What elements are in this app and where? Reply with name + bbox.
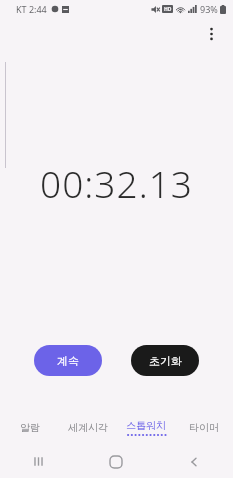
- button[interactable]: More options: [197, 20, 225, 48]
- staticText: HD: [164, 6, 172, 13]
- button[interactable]: 초기화: [131, 345, 199, 376]
- staticText: 초기화: [149, 354, 182, 368]
- button[interactable]: Home: [77, 445, 155, 478]
- staticText: 스톱워치: [126, 419, 166, 432]
- staticText: 타이머: [189, 421, 219, 434]
- button[interactable]: Recents: [0, 445, 77, 478]
- button[interactable]: 알람: [0, 412, 59, 442]
- button[interactable]: 계속: [34, 345, 102, 376]
- button[interactable]: 세계시각: [59, 412, 117, 442]
- staticText: 계속: [57, 354, 79, 368]
- button[interactable]: 타이머: [175, 412, 233, 442]
- staticText: 93%: [200, 3, 218, 15]
- button[interactable]: Back: [155, 445, 233, 478]
- button[interactable]: 스톱워치: [117, 412, 175, 442]
- staticText: KT 2:44: [16, 3, 47, 15]
- staticText: 세계시각: [68, 421, 108, 434]
- staticText: 알람: [20, 421, 40, 434]
- staticText: 00:32.13: [40, 158, 193, 208]
